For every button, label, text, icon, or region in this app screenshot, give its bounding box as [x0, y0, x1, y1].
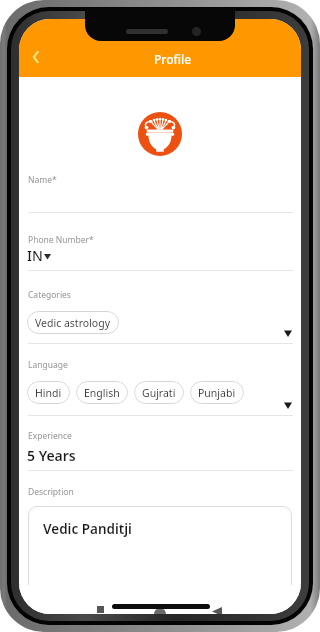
button[interactable]: Expand — [284, 402, 292, 410]
button[interactable]: Punjabi — [190, 381, 244, 404]
staticText: Description — [28, 486, 74, 498]
button[interactable]: Gujrati — [134, 381, 184, 404]
staticText: Vedic Panditji — [43, 520, 132, 538]
staticText: Experience — [28, 430, 72, 442]
button[interactable]: English — [76, 381, 128, 404]
staticText: Name* — [28, 174, 57, 186]
button[interactable]: Home — [154, 608, 166, 614]
button[interactable]: Back — [212, 607, 222, 614]
staticText: Gujrati — [142, 386, 176, 400]
staticText: Phone Number* — [28, 234, 94, 246]
staticText: Language — [28, 359, 68, 371]
staticText: Vedic astrology — [35, 316, 111, 330]
staticText: Categories — [28, 289, 71, 301]
button[interactable]: Back — [21, 42, 51, 72]
staticText: Punjabi — [198, 386, 236, 400]
staticText: IN — [27, 246, 43, 265]
button[interactable]: Vedic Panditji — [28, 506, 292, 606]
button[interactable]: Expand — [284, 330, 292, 338]
staticText: Profile — [154, 51, 192, 67]
staticText: Hindi — [35, 386, 62, 400]
staticText: 5 Years — [27, 446, 76, 465]
staticText: English — [84, 386, 120, 400]
button[interactable]: Vedic astrology — [27, 311, 119, 334]
button[interactable]: Hindi — [27, 381, 70, 404]
